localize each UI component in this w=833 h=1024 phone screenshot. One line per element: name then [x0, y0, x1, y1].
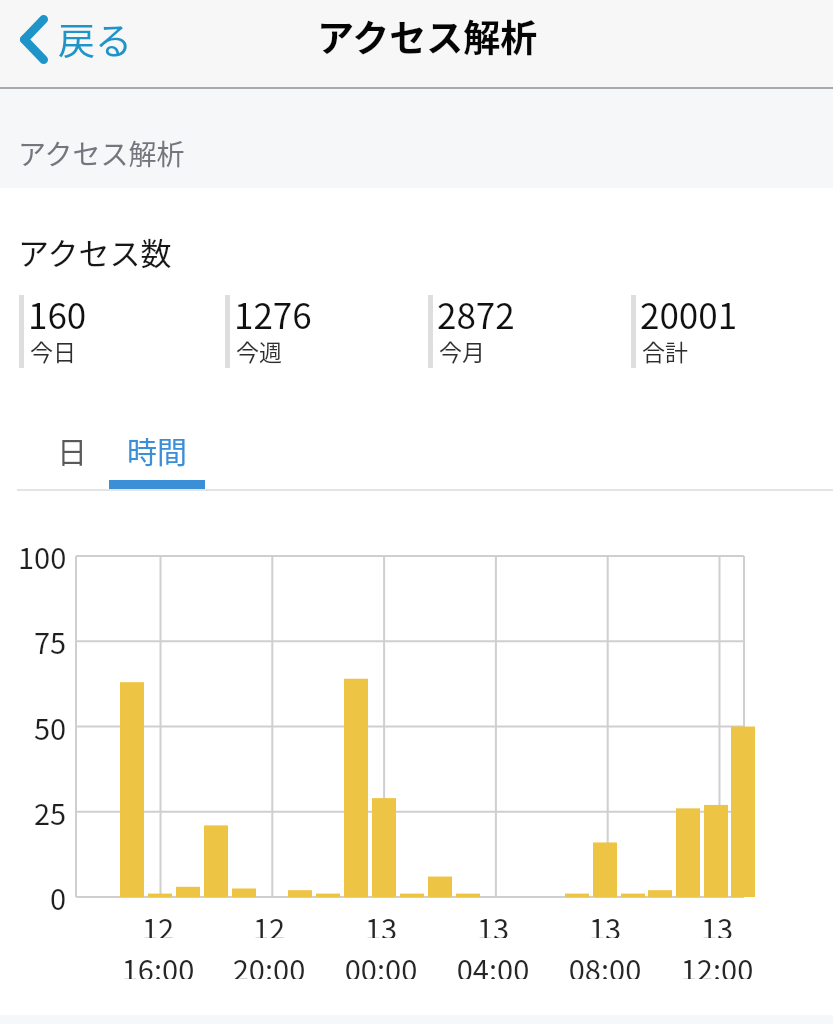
staticText: 13 — [311, 906, 451, 938]
staticText: 50 — [34, 706, 67, 748]
staticText: アクセス解析 — [317, 9, 538, 63]
staticText: 今日 — [30, 334, 76, 367]
button[interactable]: Back — [8, 4, 132, 84]
staticText: 13 — [535, 906, 675, 938]
staticText: 日 — [57, 428, 87, 471]
button[interactable]: 日 — [44, 424, 100, 491]
button[interactable]: 20001 — [631, 295, 827, 368]
staticText: 12 — [88, 906, 228, 938]
staticText: 75 — [34, 620, 67, 662]
staticText: アクセス数 — [18, 229, 172, 274]
button[interactable]: 1276 — [225, 295, 421, 368]
staticText: 160 — [28, 288, 87, 339]
staticText: 16:00 — [88, 947, 228, 979]
staticText: 25 — [34, 791, 67, 833]
staticText: 今週 — [236, 334, 282, 367]
staticText: 合計 — [642, 334, 688, 367]
staticText: 戻る — [58, 12, 132, 66]
button[interactable]: 160 — [19, 295, 215, 368]
button[interactable]: 2872 — [428, 295, 624, 368]
button[interactable]: 時間 — [108, 424, 206, 491]
staticText: アクセス解析 — [18, 133, 185, 174]
staticText: 100 — [18, 535, 67, 577]
staticText: 04:00 — [423, 947, 563, 979]
staticText: 0 — [50, 876, 67, 918]
staticText: 1276 — [234, 288, 312, 339]
staticText: 13 — [423, 906, 563, 938]
staticText: 今月 — [439, 334, 485, 367]
staticText: 2872 — [437, 288, 515, 339]
staticText: 12:00 — [647, 947, 787, 979]
staticText: 12 — [199, 906, 339, 938]
staticText: 20001 — [640, 288, 738, 339]
staticText: 時間 — [127, 428, 187, 471]
staticText: 13 — [647, 906, 787, 938]
staticText: 08:00 — [535, 947, 675, 979]
staticText: 20:00 — [199, 947, 339, 979]
staticText: 00:00 — [311, 947, 451, 979]
